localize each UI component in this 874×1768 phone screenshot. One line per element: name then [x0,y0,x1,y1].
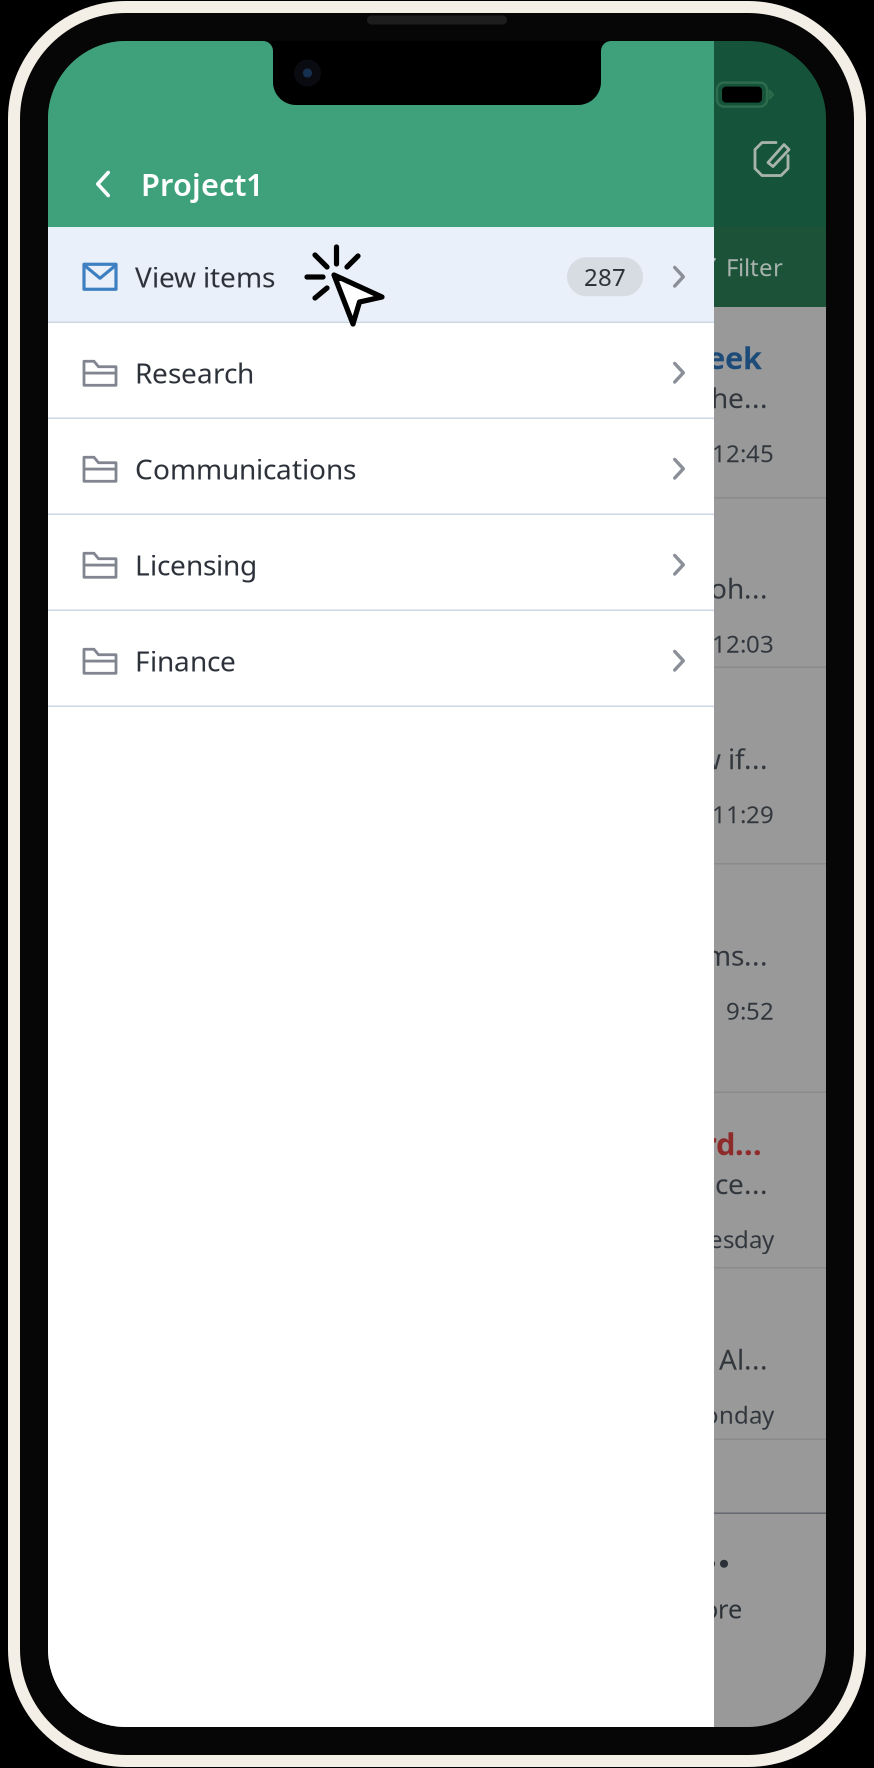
staticText: Mailboxes [92,139,243,180]
button[interactable]: Mailboxes [267,1514,417,1728]
staticText: Inbox [86,249,161,285]
staticText: 12:45 [712,437,774,469]
staticText: 11:29 [712,798,774,830]
button[interactable]: Research [48,323,714,419]
staticText: Communications [135,450,356,487]
button[interactable]: View items [48,227,714,323]
staticText: Kickoff plan for next week [362,337,762,378]
staticText: Finance [135,642,236,679]
staticText: 287 [584,261,626,293]
staticText: Andrea Collins [82,528,290,568]
staticText: View items [135,258,275,295]
staticText: 9:52 [726,994,774,1026]
button[interactable]: Finance [48,611,714,707]
staticText: About the draft — let me know if... [320,740,768,777]
staticText: Thanks for sending the report. Al... [313,1340,768,1377]
button[interactable]: Back [81,157,125,211]
staticText: Project1 [141,164,264,204]
button[interactable]: Licensing [48,515,714,611]
staticText: Research [135,354,254,391]
staticText: Re: follow-up notes from joh... [375,569,768,606]
button[interactable]: More [636,1514,786,1728]
staticText: More [680,1592,742,1625]
staticText: Revised timeline — please check the... [274,379,768,416]
staticText: Updated mockups and all the forms... [277,936,768,973]
staticText: Licensing [135,546,257,583]
staticText: Tuesday [682,1223,774,1255]
staticText: Urgent: declined card... [410,1123,762,1164]
staticText: 12:03 [712,627,774,659]
staticText: Marcus Webb [82,698,279,739]
staticText: Monday [682,1398,774,1430]
button[interactable]: Communications [48,419,714,515]
staticText: Filter [726,251,783,283]
staticText: Please review the attached invoice... [298,1165,768,1202]
